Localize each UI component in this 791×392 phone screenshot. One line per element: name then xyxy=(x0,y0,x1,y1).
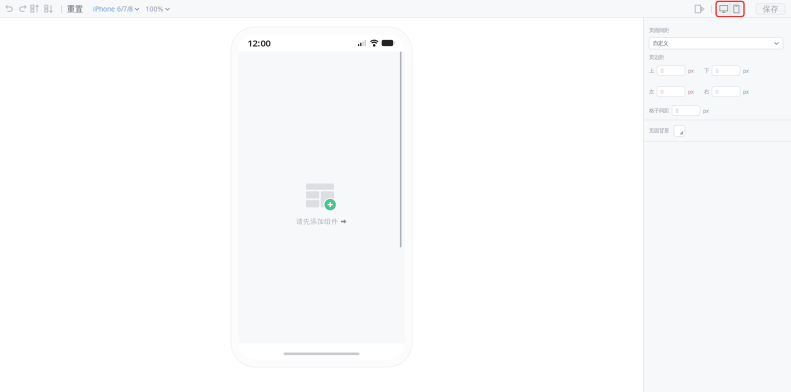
button[interactable]: Preview xyxy=(694,0,705,17)
staticText: 0 xyxy=(660,88,663,95)
staticText: 格子间距 xyxy=(649,107,669,114)
button[interactable]: 重置 xyxy=(67,0,83,17)
staticText: px xyxy=(688,67,694,74)
staticText: 左 xyxy=(649,88,654,95)
staticText: 上 xyxy=(649,67,654,74)
button[interactable]: Page background colour xyxy=(674,125,685,136)
button[interactable]: Mobile preview xyxy=(730,3,742,15)
staticText: px xyxy=(688,88,694,95)
button[interactable]: Redo xyxy=(18,0,27,17)
staticText: 0 xyxy=(715,88,718,95)
button[interactable]: Sort descending xyxy=(44,0,54,17)
staticText: 页边距 xyxy=(649,54,664,61)
button[interactable]: 保存 xyxy=(756,4,785,14)
staticText: 右 xyxy=(704,88,709,95)
staticText: iPhone 6/7/8 xyxy=(93,5,133,13)
button[interactable]: 100% xyxy=(145,0,170,17)
staticText: 重置 xyxy=(67,4,83,14)
button[interactable]: iPhone 6/7/8 xyxy=(93,0,139,17)
button[interactable]: Desktop preview xyxy=(718,3,730,15)
staticText: 请先添加组件 xyxy=(296,217,338,226)
button[interactable]: Undo xyxy=(5,0,14,17)
staticText: 保存 xyxy=(762,4,778,14)
staticText: 0 xyxy=(660,67,663,74)
staticText: 下 xyxy=(704,67,709,74)
button[interactable]: 自定义 xyxy=(649,38,783,49)
staticText: 页面间距 xyxy=(649,27,669,34)
staticText: 自定义 xyxy=(653,40,668,47)
staticText: 8 xyxy=(675,107,678,114)
staticText: 0 xyxy=(715,67,718,74)
staticText: 100% xyxy=(145,5,163,13)
staticText: px xyxy=(703,107,709,114)
staticText: px xyxy=(743,67,749,74)
staticText: 页面背景 xyxy=(649,127,669,134)
button[interactable]: Sort ascending xyxy=(30,0,40,17)
staticText: 12:00 xyxy=(247,37,270,49)
staticText: px xyxy=(743,88,749,95)
